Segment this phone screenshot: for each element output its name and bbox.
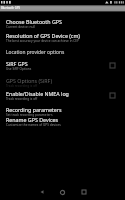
staticText: Location provider options [6, 49, 65, 56]
staticText: The best accuracy your device can achiev… [6, 39, 79, 43]
staticText: Rename GPS Devices [6, 116, 59, 123]
button[interactable] [0, 87, 125, 103]
staticText: Bluetooth GPS [1, 6, 20, 10]
button[interactable]: Back [31, 185, 52, 199]
staticText: Choose Bluetooth GPS [6, 18, 62, 25]
button[interactable]: Home [52, 185, 73, 199]
staticText: Track recording is off [6, 97, 38, 101]
staticText: SiRF GPS [6, 60, 28, 67]
staticText: Customize the names of GPS devices [6, 123, 61, 127]
staticText: Track recording is off [6, 84, 38, 88]
button[interactable] [0, 30, 125, 45]
button[interactable]: Recents [73, 185, 94, 199]
button[interactable] [0, 56, 125, 74]
staticText: Resolution of GPS Device (cm) [6, 32, 80, 39]
staticText: Set track recording parameters [6, 113, 53, 117]
staticText: Use SiRF Options [6, 67, 32, 71]
button[interactable] [0, 103, 125, 115]
staticText: Current device: null [6, 25, 36, 29]
button[interactable]: Toggle SiRF GPS [108, 61, 117, 70]
button[interactable]: Toggle Enable/Disable NMEA log [108, 91, 117, 100]
staticText: GPS Options (SiRF) [6, 77, 53, 84]
button[interactable] [0, 74, 125, 87]
staticText: Enable/Disable NMEA log [6, 90, 69, 97]
button[interactable] [0, 115, 125, 130]
staticText: Recording parameters [6, 106, 62, 113]
button[interactable] [0, 15, 125, 30]
